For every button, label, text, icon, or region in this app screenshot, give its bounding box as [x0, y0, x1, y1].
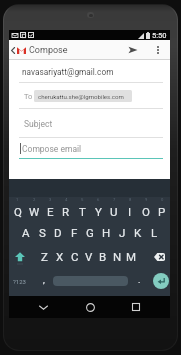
staticText: J: [119, 226, 126, 239]
staticText: navasariyatt@gmail.com: [22, 67, 114, 77]
staticText: T: [79, 205, 86, 218]
button[interactable]: 9: [138, 197, 154, 221]
button[interactable]: Z: [37, 245, 52, 269]
staticText: W: [29, 205, 40, 218]
staticText: 7: [113, 197, 116, 202]
staticText: cherukattu.she@lgmobiles.com: [38, 93, 124, 100]
button[interactable]: Backspace: [138, 245, 170, 269]
button[interactable]: Send: [123, 40, 143, 60]
staticText: N: [113, 250, 122, 263]
staticText: 5:50: [152, 31, 167, 40]
button[interactable]: L: [146, 221, 162, 245]
staticText: G: [86, 226, 94, 239]
button[interactable]: ,: [32, 269, 53, 293]
staticText: F: [71, 226, 78, 239]
staticText: ,: [43, 275, 45, 286]
staticText: S: [39, 226, 46, 239]
staticText: K: [134, 226, 142, 239]
button[interactable]: Enter: [149, 269, 170, 293]
staticText: 0: [161, 197, 164, 202]
staticText: 8: [129, 197, 132, 202]
staticText: D: [54, 226, 62, 239]
button[interactable]: 8: [122, 197, 138, 221]
button[interactable]: 5: [74, 197, 90, 221]
button[interactable]: C: [67, 245, 82, 269]
staticText: X: [56, 250, 64, 263]
staticText: 2: [33, 197, 36, 202]
button[interactable]: D: [50, 221, 66, 245]
staticText: Q: [14, 205, 22, 218]
button[interactable]: 7: [106, 197, 122, 221]
staticText: 9: [145, 197, 148, 202]
staticText: C: [71, 250, 79, 263]
staticText: I: [128, 205, 132, 218]
button[interactable]: 6: [90, 197, 106, 221]
staticText: 5: [81, 197, 84, 202]
button[interactable]: 0: [154, 197, 170, 221]
button[interactable]: S: [34, 221, 50, 245]
button[interactable]: Shift: [9, 245, 37, 269]
staticText: M: [126, 250, 137, 263]
staticText: 4: [65, 197, 68, 202]
button[interactable]: More options: [150, 40, 166, 60]
button[interactable]: Home: [77, 296, 103, 318]
staticText: V: [85, 250, 93, 263]
staticText: Y: [95, 205, 102, 218]
staticText: A: [22, 226, 30, 239]
staticText: To: [24, 92, 33, 101]
staticText: H: [102, 226, 111, 239]
staticText: .: [138, 275, 141, 286]
button[interactable]: 4: [58, 197, 74, 221]
button[interactable]: X: [52, 245, 67, 269]
button[interactable]: G: [82, 221, 98, 245]
staticText: U: [110, 205, 118, 218]
staticText: 1: [16, 197, 19, 202]
staticText: E: [47, 205, 54, 218]
button[interactable]: Space: [53, 269, 128, 293]
button[interactable]: Hide keyboard: [30, 296, 56, 318]
button[interactable]: J: [114, 221, 130, 245]
staticText: Subject: [24, 119, 53, 129]
staticText: Compose email: [22, 144, 82, 154]
button[interactable]: F: [66, 221, 82, 245]
staticText: 3: [49, 197, 52, 202]
staticText: R: [62, 205, 70, 218]
button[interactable]: .: [128, 269, 149, 293]
staticText: 6: [97, 197, 100, 202]
button[interactable]: 3: [42, 197, 58, 221]
button[interactable]: M: [124, 245, 138, 269]
button[interactable]: 1: [9, 197, 26, 221]
button[interactable]: H: [98, 221, 114, 245]
button[interactable]: Navigate up: [9, 40, 16, 60]
staticText: P: [158, 205, 166, 218]
staticText: Z: [41, 250, 48, 263]
button[interactable]: V: [82, 245, 96, 269]
staticText: O: [142, 205, 150, 218]
staticText: Compose: [29, 45, 68, 56]
button[interactable]: A: [18, 221, 34, 245]
button[interactable]: B: [96, 245, 110, 269]
button[interactable]: Recent apps: [123, 296, 149, 318]
staticText: B: [99, 250, 107, 263]
staticText: L: [151, 226, 158, 239]
button[interactable]: Symbols: [9, 269, 32, 293]
staticText: ?123: [13, 278, 26, 285]
button[interactable]: K: [130, 221, 146, 245]
button[interactable]: N: [110, 245, 124, 269]
button[interactable]: 2: [26, 197, 42, 221]
